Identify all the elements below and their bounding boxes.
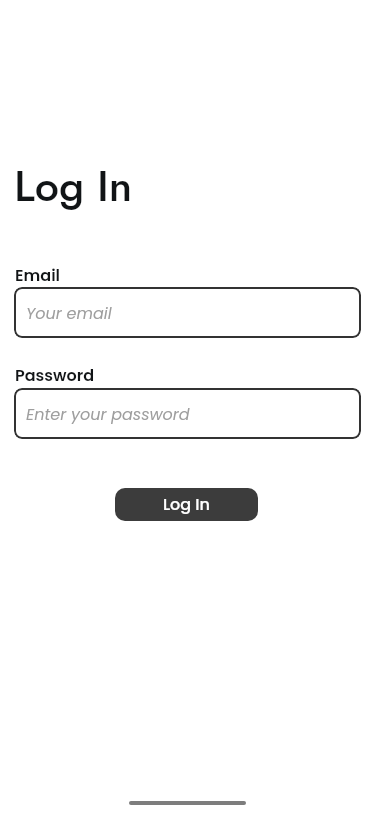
staticText: Password <box>15 364 95 386</box>
staticText: Log In <box>163 493 210 515</box>
staticText: Your email <box>26 302 112 324</box>
staticText: Enter your password <box>26 403 190 425</box>
button[interactable]: Enter your password <box>14 388 361 439</box>
button[interactable]: Your email <box>14 287 361 338</box>
button[interactable]: Log In <box>115 488 258 521</box>
staticText: Email <box>15 264 61 286</box>
staticText: Log In <box>14 155 133 217</box>
